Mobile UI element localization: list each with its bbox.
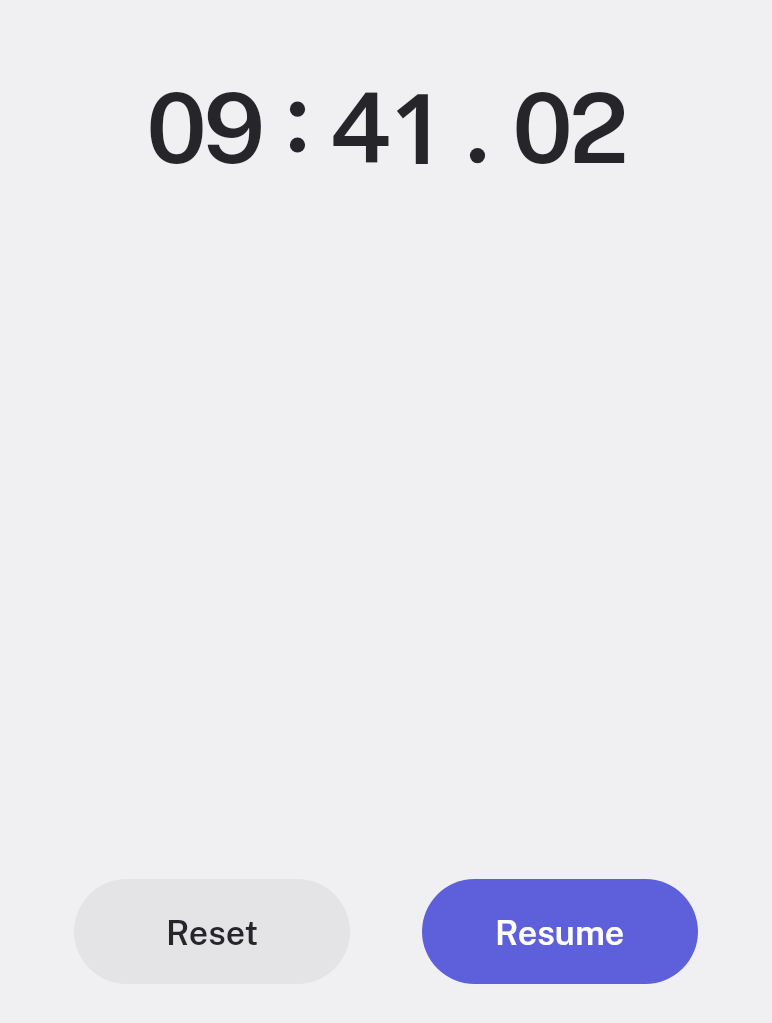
staticText: 4	[329, 71, 386, 185]
staticText: 0	[146, 71, 203, 185]
button[interactable]: Reset	[74, 879, 350, 984]
staticText: Reset	[166, 913, 259, 953]
staticText: 0	[512, 71, 569, 185]
staticText: Resume	[495, 913, 625, 953]
button[interactable]: Resume	[422, 879, 698, 984]
staticText: 9	[203, 71, 260, 185]
staticText: 2	[569, 71, 626, 185]
staticText: 1	[390, 60, 446, 180]
other: Elapsed time 09:41.02	[0, 68, 772, 188]
